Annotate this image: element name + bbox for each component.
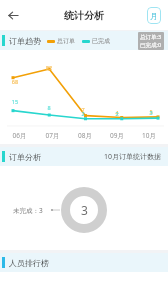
staticText: 未完成：3	[13, 206, 43, 215]
staticText: 订单趋势	[9, 36, 41, 46]
staticText: 2	[112, 110, 122, 117]
staticText: 3	[81, 202, 88, 218]
staticText: 8	[44, 104, 54, 111]
staticText: 09月	[101, 131, 133, 140]
button[interactable]: 月	[147, 7, 161, 24]
staticText: 7	[78, 106, 88, 113]
staticText: 15	[10, 98, 20, 105]
staticText: 82	[44, 64, 54, 71]
staticText: 已完成:0	[140, 41, 162, 49]
staticText: 3	[146, 109, 156, 116]
staticText: 08月	[69, 131, 101, 140]
staticText: 订单分析	[9, 152, 41, 162]
staticText: 68	[10, 78, 20, 85]
staticText: 4	[112, 109, 122, 116]
staticText: 06月	[3, 131, 36, 140]
staticText: 月	[150, 11, 158, 21]
staticText: 2	[78, 110, 88, 117]
staticText: 统计分析	[64, 9, 104, 22]
staticText: 总订单:3	[140, 33, 162, 41]
staticText: 10月订单统计数据	[104, 152, 162, 162]
staticText: 5	[146, 108, 156, 115]
staticText: 07月	[36, 131, 69, 140]
staticText: 10月	[133, 131, 165, 140]
staticText: 总订单	[57, 37, 75, 45]
button[interactable]: Back	[0, 2, 26, 28]
staticText: 已完成	[92, 37, 110, 45]
staticText: 人员排行榜	[9, 258, 49, 268]
